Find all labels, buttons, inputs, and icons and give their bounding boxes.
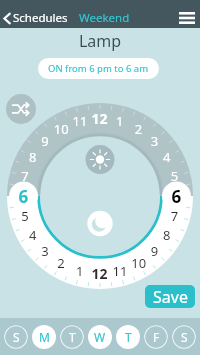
button[interactable]: Shuffle bbox=[6, 94, 36, 124]
button[interactable]: T bbox=[60, 325, 84, 349]
staticText: ON from 6 pm to 6 am bbox=[48, 62, 149, 75]
staticText: Lamp bbox=[0, 30, 200, 52]
button[interactable]: Menu bbox=[174, 8, 200, 28]
staticText: F bbox=[153, 329, 160, 345]
staticText: W bbox=[94, 329, 106, 345]
button[interactable]: S bbox=[172, 325, 196, 349]
button[interactable]: W bbox=[88, 325, 112, 349]
button[interactable]: F bbox=[144, 325, 168, 349]
button[interactable]: M bbox=[32, 325, 56, 349]
staticText: S bbox=[13, 329, 20, 345]
button[interactable]: Schedules bbox=[0, 8, 70, 28]
button[interactable]: ON from 6 pm to 6 am bbox=[38, 58, 159, 79]
staticText: T bbox=[69, 329, 76, 345]
button[interactable]: T bbox=[116, 325, 140, 349]
button[interactable]: S bbox=[4, 325, 28, 349]
staticText: Save bbox=[153, 286, 188, 308]
staticText: Weekend bbox=[79, 10, 130, 26]
staticText: Schedules bbox=[13, 10, 68, 26]
staticText: M bbox=[39, 329, 50, 345]
button[interactable]: Save bbox=[145, 285, 195, 308]
staticText: T bbox=[125, 329, 132, 345]
staticText: S bbox=[181, 329, 188, 345]
